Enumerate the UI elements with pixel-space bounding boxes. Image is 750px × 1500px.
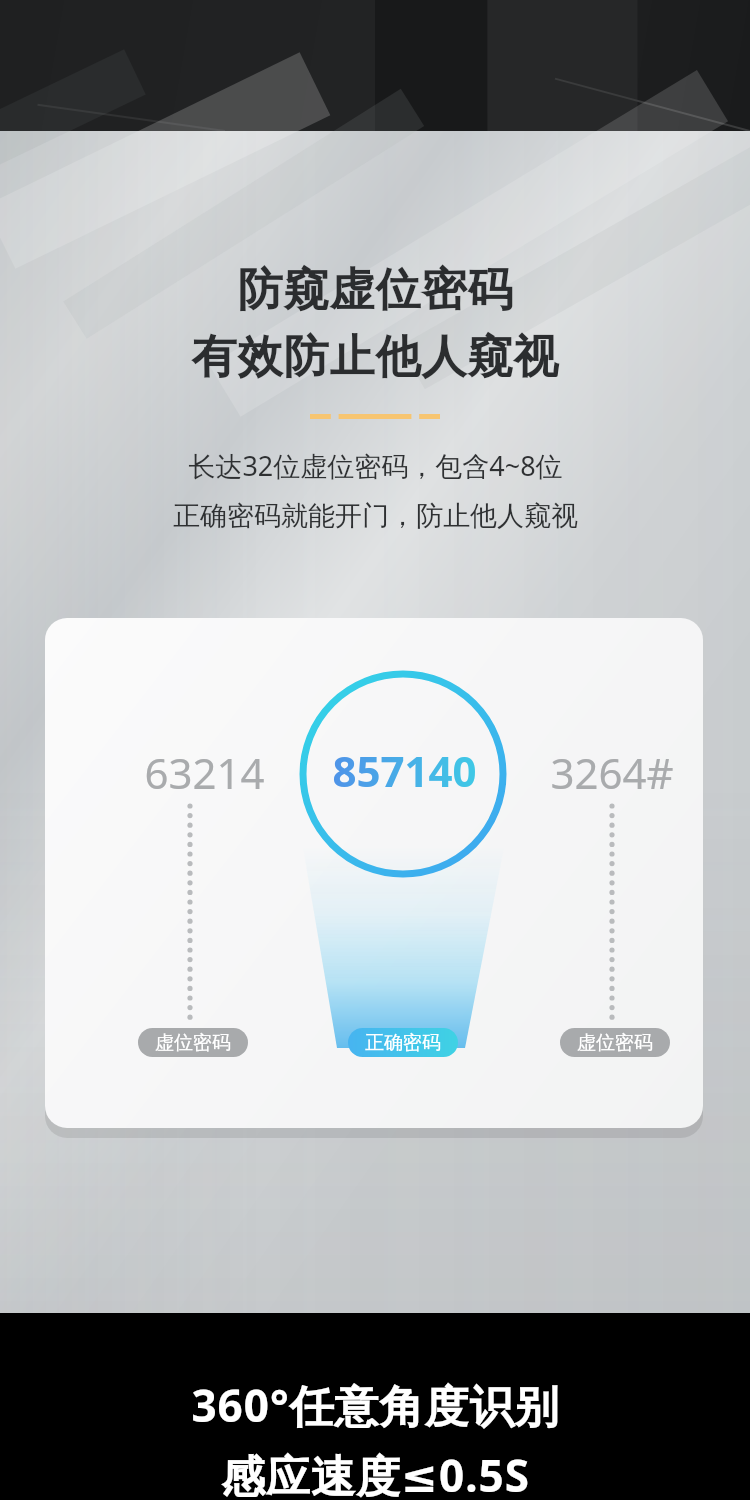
staticText: 3264# [550,744,674,801]
staticText: 63214 [144,744,265,801]
button[interactable]: 正确密码 [348,1028,458,1057]
staticText: 正确密码就能开门，防止他人窥视 [173,499,578,533]
staticText: 正确密码 [365,1031,441,1055]
staticText: 虚位密码 [577,1031,653,1055]
staticText: 360°任意角度识别 [191,1375,560,1435]
staticText: 长达32位虚位密码，包含4~8位 [188,447,563,484]
staticText: 感应速度≤0.5S [221,1445,530,1500]
staticText: 虚位密码 [155,1031,231,1055]
staticText: 有效防止他人窥视 [191,329,559,386]
button[interactable]: 虚位密码 [560,1028,670,1057]
staticText: 防窥虚位密码 [237,262,513,319]
staticText: 857140 [332,742,477,799]
button[interactable]: 虚位密码 [138,1028,248,1057]
button[interactable]: 63214 [45,618,703,1128]
